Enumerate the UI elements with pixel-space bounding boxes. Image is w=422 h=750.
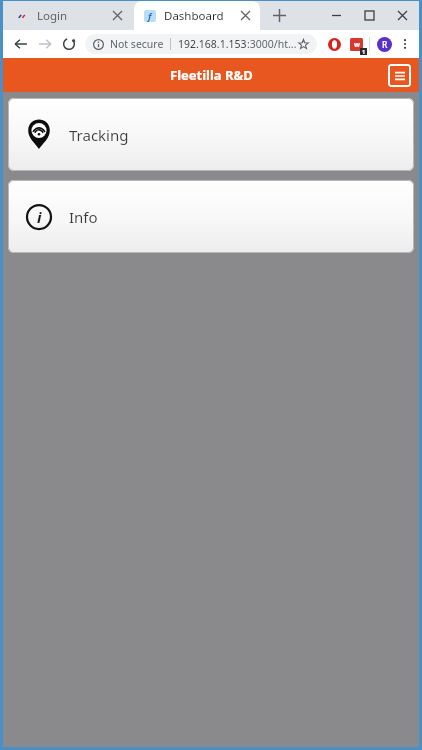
button[interactable]: f [134,1,260,30]
button[interactable]: Minimize [320,1,353,30]
staticText: Login [37,8,68,24]
button[interactable]: Tracking [8,98,414,171]
button[interactable]: Reload [57,32,81,56]
button[interactable]: Forward [33,32,57,56]
button[interactable]: i [8,180,414,253]
staticText: w [354,40,360,50]
button[interactable]: Menu [388,64,411,87]
staticText: Tracking [69,125,129,145]
button[interactable]: Opera extension [323,33,345,55]
button[interactable]: Login [7,1,132,30]
button[interactable]: Close [386,1,419,30]
staticText: f [148,10,152,22]
staticText: R [382,39,388,51]
button[interactable]: Not secure [85,34,317,54]
button[interactable]: New tab [265,1,294,30]
staticText: :3000/ht... [247,37,297,51]
staticText: 1 [362,48,366,55]
button[interactable]: Profile [373,33,395,55]
button[interactable]: Chrome menu [395,34,415,54]
staticText: Info [69,207,98,227]
button[interactable]: Maximize [353,1,386,30]
staticText: Dashboard [164,8,224,24]
staticText: 192.168.1.153 [178,37,247,51]
button[interactable]: Extension [345,33,367,55]
staticText: Not secure [110,37,164,51]
staticText: Fleetilla R&D [170,66,253,84]
staticText: i [37,207,42,227]
button[interactable]: Back [9,32,33,56]
button[interactable]: Bookmark [298,39,309,50]
